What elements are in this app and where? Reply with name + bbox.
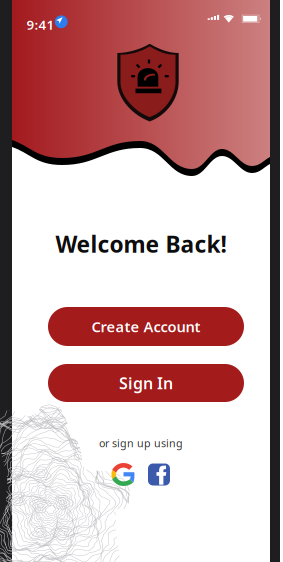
button[interactable]: Sign In: [48, 364, 244, 402]
staticText: Sign In: [119, 372, 173, 394]
staticText: Welcome Back!: [55, 229, 226, 259]
button[interactable]: Sign up with Google: [112, 463, 135, 486]
staticText: 9:41: [26, 16, 54, 33]
staticText: or sign up using: [99, 436, 183, 450]
staticText: Create Account: [91, 317, 200, 336]
button[interactable]: Create Account: [48, 307, 244, 346]
button[interactable]: Sign up with Facebook: [148, 463, 170, 485]
